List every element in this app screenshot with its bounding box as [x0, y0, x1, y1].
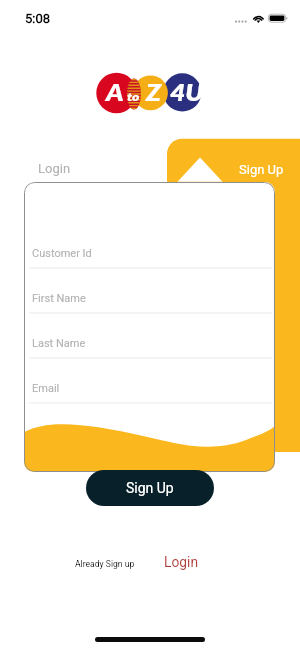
staticText: Login — [164, 554, 199, 570]
button[interactable]: Login — [28, 153, 98, 183]
button[interactable]: Email — [24, 379, 275, 397]
staticText: to — [127, 89, 140, 103]
staticText: Sign Up — [126, 480, 174, 496]
button[interactable]: Last Name — [24, 334, 275, 352]
staticText: 5:08 — [25, 11, 51, 26]
staticText: A — [106, 78, 124, 106]
staticText: Last Name — [32, 337, 86, 350]
button[interactable]: First Name — [24, 289, 275, 307]
button[interactable]: Sign Up — [86, 470, 214, 506]
staticText: Sign Up — [239, 162, 284, 177]
staticText: 4U — [170, 78, 204, 106]
staticText: First Name — [32, 292, 86, 305]
button[interactable]: Customer Id — [24, 244, 275, 262]
staticText: Already Sign up — [75, 559, 135, 569]
staticText: Z — [146, 78, 162, 106]
staticText: Email — [32, 382, 60, 395]
staticText: Customer Id — [32, 247, 92, 260]
staticText: Login — [38, 161, 71, 176]
button[interactable]: Sign Up — [229, 154, 299, 184]
button[interactable]: Login — [164, 551, 200, 573]
